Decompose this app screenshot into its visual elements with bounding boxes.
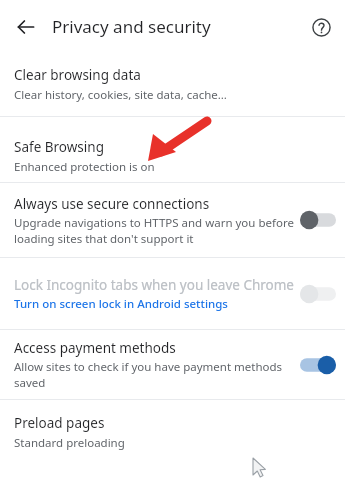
staticText: Turn on screen lock in Android settings (14, 296, 228, 312)
button[interactable]: Clear browsing data (0, 53, 345, 116)
button[interactable]: Back (8, 9, 44, 45)
staticText: Preload pages (14, 414, 105, 432)
staticText: Clear browsing data (14, 66, 141, 84)
staticText: Privacy and security (52, 15, 211, 38)
staticText: Enhanced protection is on (14, 159, 155, 175)
staticText: Standard preloading (14, 435, 125, 451)
staticText: Allow sites to check if you have payment… (14, 359, 294, 390)
staticText: Upgrade navigations to HTTPS and warn yo… (14, 215, 294, 246)
button[interactable]: Help (304, 10, 338, 44)
button[interactable]: Always use secure connections (0, 183, 345, 257)
staticText: Safe Browsing (14, 138, 104, 156)
staticText: Access payment methods (14, 339, 176, 357)
staticText: Lock Incognito tabs when you leave Chrom… (14, 276, 294, 294)
button[interactable]: Access payment methods (0, 330, 345, 399)
button[interactable]: Safe Browsing (0, 117, 345, 182)
button[interactable]: Preload pages (0, 400, 345, 503)
staticText: Always use secure connections (14, 195, 210, 213)
staticText: Clear history, cookies, site data, cache… (14, 87, 227, 103)
button[interactable]: Turn on screen lock in Android settings (14, 296, 228, 312)
